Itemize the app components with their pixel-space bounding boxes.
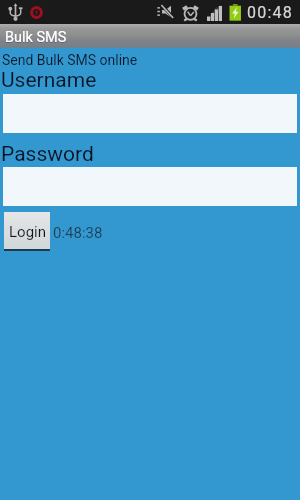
staticText: 0:48:38 <box>53 224 103 242</box>
staticText: Send Bulk SMS online <box>2 52 138 68</box>
staticText: 00:48 <box>247 3 293 22</box>
staticText: Bulk SMS <box>5 30 67 47</box>
staticText: Bulk SMS <box>5 29 67 46</box>
button[interactable]: Login <box>4 212 50 251</box>
staticText: Password <box>1 142 94 167</box>
staticText: Username <box>1 68 97 93</box>
staticText: Login <box>9 223 46 241</box>
